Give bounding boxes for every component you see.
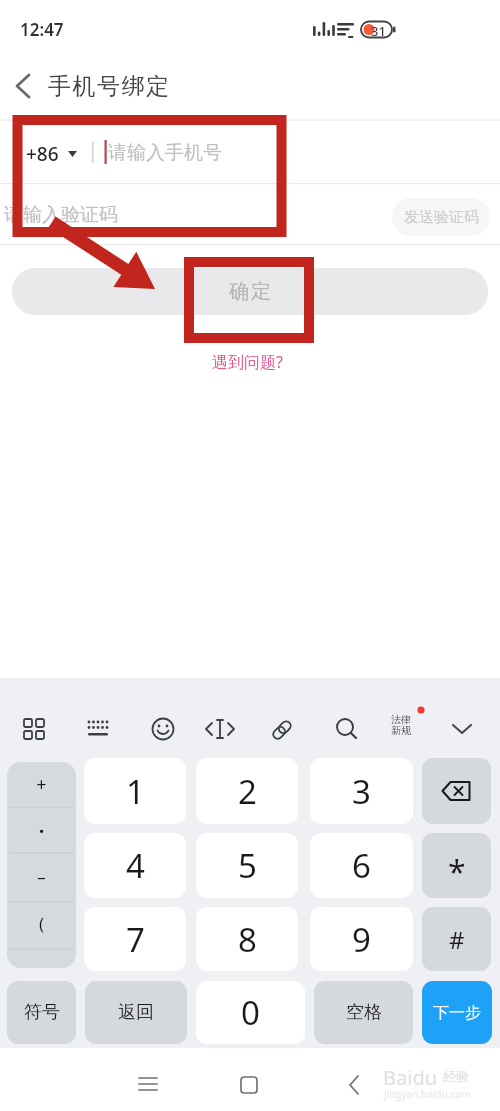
staticText: ( bbox=[7, 912, 76, 935]
staticText: 12:47 bbox=[20, 18, 64, 41]
staticText: 新规 bbox=[391, 724, 411, 737]
staticText: 经验 bbox=[443, 1068, 469, 1084]
staticText: +86 bbox=[26, 141, 59, 167]
button[interactable]: 8 bbox=[196, 907, 298, 971]
button[interactable]: 2 bbox=[196, 758, 298, 824]
staticText: * bbox=[448, 850, 466, 894]
button[interactable]: 3 bbox=[310, 758, 413, 824]
button[interactable]: * bbox=[422, 833, 491, 898]
staticText: · bbox=[7, 817, 76, 844]
staticText: + bbox=[7, 772, 76, 797]
button[interactable] bbox=[422, 758, 491, 824]
staticText: 8 bbox=[238, 917, 257, 962]
staticText: Baidu bbox=[383, 1064, 438, 1091]
staticText: 下一步 bbox=[433, 1003, 481, 1023]
button[interactable]: 确定 bbox=[12, 268, 488, 315]
staticText: jingyan.baidu.com bbox=[384, 1087, 471, 1101]
staticText: # bbox=[449, 923, 465, 956]
staticText: 请输入验证码 bbox=[4, 203, 118, 227]
button[interactable]: 6 bbox=[310, 833, 413, 898]
staticText: 请输入手机号 bbox=[108, 141, 222, 165]
button[interactable]: 空格 bbox=[314, 981, 413, 1044]
staticText: 7 bbox=[126, 917, 145, 962]
staticText: 5 bbox=[238, 843, 257, 888]
button[interactable]: 1 bbox=[84, 758, 186, 824]
staticText: 返回 bbox=[118, 1001, 154, 1024]
button[interactable]: 下一步 bbox=[422, 981, 492, 1044]
staticText: 符号 bbox=[24, 1001, 60, 1024]
button[interactable]: 符号 bbox=[7, 981, 76, 1044]
staticText: 9 bbox=[352, 917, 371, 962]
button[interactable]: + bbox=[7, 762, 76, 968]
staticText: 法律 bbox=[391, 713, 411, 726]
staticText: – bbox=[7, 865, 76, 888]
staticText: 2 bbox=[238, 769, 257, 814]
button[interactable]: 发送验证码 bbox=[392, 198, 490, 236]
button[interactable]: 4 bbox=[84, 833, 186, 898]
staticText: 手机号绑定 bbox=[48, 72, 171, 101]
button[interactable]: 0 bbox=[196, 981, 305, 1044]
button[interactable]: 返回 bbox=[85, 981, 187, 1044]
staticText: 31 bbox=[371, 22, 386, 40]
staticText: 1 bbox=[126, 769, 145, 814]
button[interactable]: 5 bbox=[196, 833, 298, 898]
staticText: 遇到问题? bbox=[212, 351, 283, 373]
staticText: 确定 bbox=[228, 279, 272, 304]
staticText: 0 bbox=[241, 990, 260, 1035]
staticText: 4 bbox=[126, 843, 145, 888]
button[interactable]: # bbox=[422, 907, 491, 971]
button[interactable]: 7 bbox=[84, 907, 186, 971]
button[interactable] bbox=[8, 66, 44, 102]
button[interactable]: 9 bbox=[310, 907, 413, 971]
staticText: 发送验证码 bbox=[404, 208, 479, 227]
staticText: 空格 bbox=[346, 1001, 382, 1024]
staticText: 6 bbox=[352, 843, 371, 888]
staticText: 3 bbox=[352, 769, 371, 814]
